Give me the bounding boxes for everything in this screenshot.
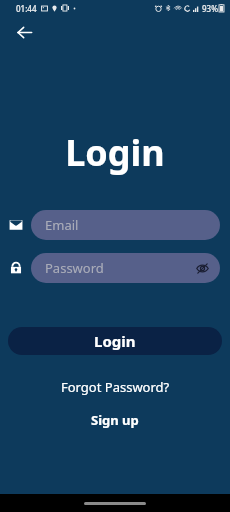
staticText: Email	[45, 216, 79, 234]
staticText: 93%	[202, 3, 218, 14]
staticText: Forgot Password?	[61, 378, 170, 396]
button[interactable]: Forgot Password?	[55, 376, 176, 398]
button[interactable]: Show password	[192, 258, 212, 278]
staticText: Login	[94, 331, 136, 351]
button[interactable]: Sign up	[85, 409, 145, 431]
button[interactable]: Password	[31, 253, 220, 283]
button[interactable]: Back	[8, 16, 40, 48]
staticText: Password	[45, 259, 104, 277]
button[interactable]: Email	[31, 210, 220, 240]
button[interactable]: Login	[8, 327, 222, 355]
staticText: Login	[65, 128, 165, 177]
staticText: Sign up	[91, 411, 139, 429]
staticText: 01:44	[16, 3, 37, 14]
